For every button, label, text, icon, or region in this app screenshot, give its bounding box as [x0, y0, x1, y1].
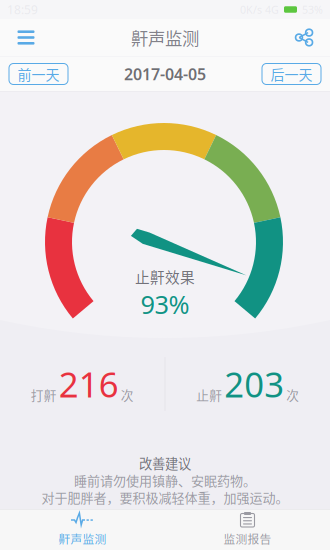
staticText: 对于肥胖者，要积极减轻体重，加强运动。: [41, 487, 288, 506]
staticText: 后一天: [270, 64, 312, 84]
staticText: 止鼾: [196, 386, 222, 404]
staticText: 次: [121, 386, 134, 404]
staticText: 监测报告: [223, 530, 271, 547]
button[interactable]: 前一天: [9, 63, 68, 84]
staticText: 0K/s: [240, 2, 262, 17]
staticText: 打鼾: [31, 386, 57, 404]
staticText: 203: [224, 361, 284, 407]
button[interactable]: 监测报告: [165, 509, 330, 550]
staticText: 2017-04-05: [124, 63, 206, 85]
staticText: 53%: [302, 2, 323, 17]
staticText: 止鼾效果: [135, 266, 195, 287]
staticText: 次: [286, 386, 299, 404]
button[interactable]: 后一天: [262, 63, 321, 84]
staticText: 93%: [140, 287, 189, 321]
staticText: 18:59: [7, 1, 38, 17]
staticText: 前一天: [17, 64, 59, 84]
staticText: 鼾声监测: [131, 25, 199, 50]
staticText: 4G: [262, 2, 279, 17]
staticText: 改善建议: [139, 453, 191, 473]
button[interactable]: 鼾声监测: [0, 509, 165, 550]
staticText: 鼾声监测: [58, 530, 106, 547]
staticText: 睡前请勿使用镇静、安眠药物。: [74, 470, 256, 489]
button[interactable]: Menu: [6, 19, 46, 56]
staticText: 216: [59, 361, 119, 407]
button[interactable]: Share: [284, 19, 324, 56]
